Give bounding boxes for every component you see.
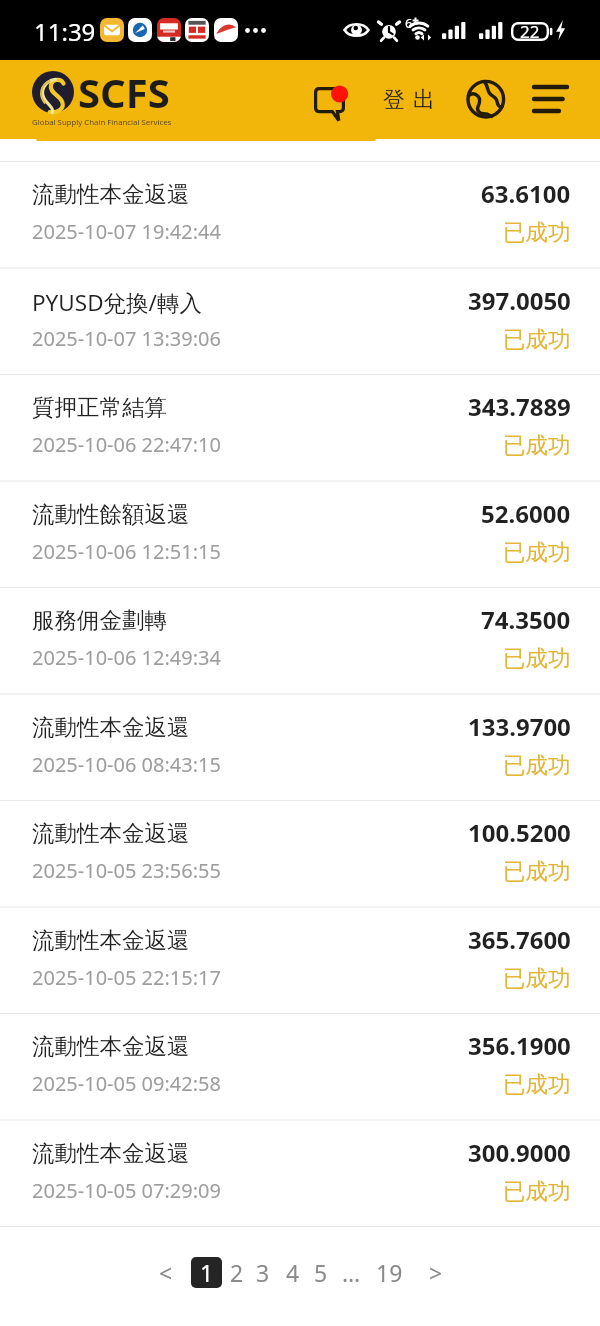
staticText: 133.9700 bbox=[468, 710, 571, 743]
staticText: 流動性本金返還 bbox=[32, 713, 190, 741]
staticText: 已成功 bbox=[503, 964, 571, 992]
staticText: 已成功 bbox=[503, 325, 571, 353]
button[interactable]: 流動性本金返還 bbox=[0, 162, 600, 268]
staticText: 已成功 bbox=[503, 538, 571, 566]
button[interactable]: 流動性本金返還 bbox=[0, 1014, 600, 1120]
staticText: 2 bbox=[230, 1257, 244, 1288]
staticText: 出 bbox=[413, 86, 435, 114]
staticText: 2025-10-06 08:43:15 bbox=[32, 751, 221, 778]
button[interactable]: 4 bbox=[277, 1257, 308, 1288]
staticText: 100.5200 bbox=[468, 816, 571, 849]
staticText: 2025-10-05 23:56:55 bbox=[32, 857, 221, 884]
staticText: Global Supply Chain Financial Services bbox=[32, 117, 172, 128]
button[interactable]: 流動性本金返還 bbox=[0, 695, 600, 801]
button[interactable]: 流動性本金返還 bbox=[0, 801, 600, 907]
button[interactable]: 5 bbox=[305, 1257, 336, 1288]
staticText: 63.6100 bbox=[481, 177, 571, 210]
staticText: 356.1900 bbox=[468, 1029, 571, 1062]
button[interactable]: Language bbox=[464, 77, 508, 121]
staticText: 2025-10-05 07:29:09 bbox=[32, 1177, 221, 1204]
staticText: 流動性本金返還 bbox=[32, 180, 190, 208]
staticText: 397.0050 bbox=[468, 284, 571, 317]
button[interactable]: 質押正常結算 bbox=[0, 375, 600, 481]
staticText: 流動性本金返還 bbox=[32, 926, 190, 954]
staticText: 52.6000 bbox=[481, 497, 571, 530]
button[interactable]: 2 bbox=[221, 1257, 252, 1288]
staticText: 已成功 bbox=[503, 1177, 571, 1205]
staticText: 已成功 bbox=[503, 644, 571, 672]
staticText: 1 bbox=[200, 1257, 214, 1288]
staticText: 343.7889 bbox=[468, 390, 571, 423]
staticText: 5 bbox=[314, 1257, 328, 1288]
staticText: 2025-10-07 19:42:44 bbox=[32, 218, 221, 245]
staticText: 300.9000 bbox=[468, 1136, 571, 1169]
button[interactable]: 流動性本金返還 bbox=[0, 908, 600, 1014]
button[interactable]: PYUSD兌換/轉入 bbox=[0, 269, 600, 375]
staticText: 2025-10-06 22:47:10 bbox=[32, 431, 221, 458]
staticText: 4 bbox=[286, 1257, 300, 1288]
staticText: 已成功 bbox=[503, 1070, 571, 1098]
staticText: 已成功 bbox=[503, 751, 571, 779]
staticText: 2025-10-07 13:39:06 bbox=[32, 325, 221, 352]
staticText: 2025-10-05 22:15:17 bbox=[32, 964, 221, 991]
staticText: 22 bbox=[520, 20, 540, 43]
staticText: 已成功 bbox=[503, 218, 571, 246]
staticText: SCFS bbox=[78, 65, 170, 119]
staticText: 2025-10-05 09:42:58 bbox=[32, 1070, 221, 1097]
staticText: 已成功 bbox=[503, 431, 571, 459]
staticText: 2025-10-06 12:49:34 bbox=[32, 644, 221, 671]
button[interactable]: 登 bbox=[378, 80, 440, 124]
button[interactable]: Messages bbox=[306, 80, 354, 128]
staticText: 流動性本金返還 bbox=[32, 1032, 190, 1060]
staticText: 流動性本金返還 bbox=[32, 819, 190, 847]
staticText: PYUSD兌換/轉入 bbox=[32, 287, 202, 318]
staticText: 6 bbox=[405, 14, 413, 32]
staticText: < bbox=[159, 1257, 173, 1288]
staticText: > bbox=[429, 1257, 443, 1288]
staticText: 流動性餘額返還 bbox=[32, 500, 190, 528]
staticText: 365.7600 bbox=[468, 923, 571, 956]
button[interactable]: 1 bbox=[191, 1257, 222, 1288]
button[interactable]: < bbox=[150, 1257, 181, 1288]
button[interactable]: 流動性本金返還 bbox=[0, 1121, 600, 1227]
staticText: 服務佣金劃轉 bbox=[32, 606, 167, 634]
staticText: 質押正常結算 bbox=[32, 393, 167, 421]
button[interactable]: 3 bbox=[247, 1257, 278, 1288]
button[interactable]: 流動性餘額返還 bbox=[0, 482, 600, 588]
staticText: 2025-10-06 12:51:15 bbox=[32, 538, 221, 565]
staticText: 11:39 bbox=[34, 15, 96, 48]
staticText: 登 bbox=[383, 86, 405, 114]
button[interactable]: Menu bbox=[526, 74, 576, 124]
button[interactable]: … bbox=[336, 1257, 367, 1288]
button[interactable]: > bbox=[420, 1257, 451, 1288]
button[interactable]: 服務佣金劃轉 bbox=[0, 588, 600, 694]
button[interactable]: 19 bbox=[374, 1257, 405, 1288]
staticText: 已成功 bbox=[503, 857, 571, 885]
staticText: 19 bbox=[376, 1257, 403, 1288]
staticText: … bbox=[342, 1257, 361, 1288]
staticText: 74.3500 bbox=[481, 603, 571, 636]
staticText: 流動性本金返還 bbox=[32, 1139, 190, 1167]
staticText: 3 bbox=[256, 1257, 270, 1288]
